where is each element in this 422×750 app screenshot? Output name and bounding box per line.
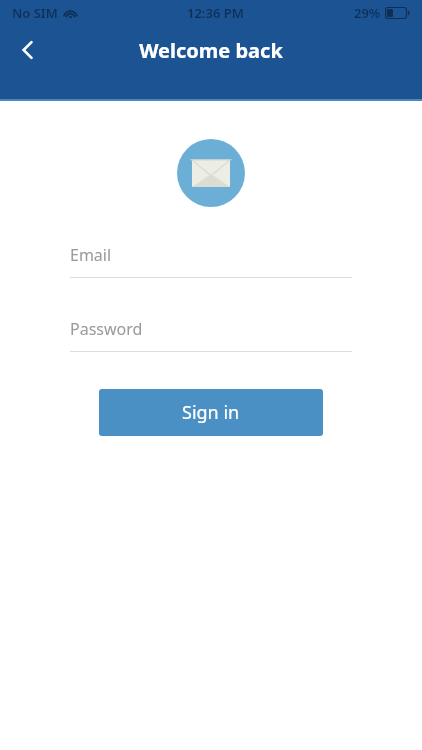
button[interactable]: Sign in [99, 389, 323, 436]
button[interactable]: Back [6, 28, 50, 72]
staticText: 29% [354, 4, 381, 22]
staticText: Sign in [182, 400, 240, 425]
button[interactable]: Password [70, 318, 352, 352]
staticText: No SIM [12, 4, 58, 22]
staticText: 12:36 PM [187, 4, 244, 22]
button[interactable]: Email [70, 244, 352, 278]
staticText: Email [70, 244, 112, 266]
staticText: Welcome back [0, 37, 422, 64]
staticText: Password [70, 318, 143, 340]
